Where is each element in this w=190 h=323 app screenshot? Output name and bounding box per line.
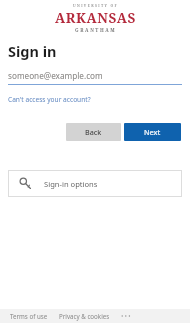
button[interactable]: Can't access your account?: [8, 95, 91, 104]
button[interactable]: Terms of use: [10, 312, 48, 320]
staticText: U N I V E R S I T Y O F: [73, 3, 117, 8]
button[interactable]: Sign-in options: [8, 170, 182, 197]
button[interactable]: More options: [119, 309, 133, 323]
button[interactable]: someone@example.com: [8, 70, 182, 85]
button[interactable]: Back: [66, 123, 121, 141]
staticText: Sign-in options: [44, 179, 98, 189]
staticText: ARKANSAS: [55, 9, 136, 27]
button[interactable]: Privacy & cookies: [59, 312, 110, 320]
staticText: Back: [85, 127, 102, 137]
staticText: Sign in: [8, 41, 57, 61]
staticText: Privacy & cookies: [59, 312, 110, 320]
staticText: someone@example.com: [8, 70, 103, 81]
staticText: G R A N T H A M: [75, 27, 115, 33]
staticText: Can't access your account?: [8, 95, 91, 104]
staticText: Next: [144, 127, 161, 137]
staticText: Terms of use: [10, 312, 48, 320]
button[interactable]: Next: [124, 123, 181, 141]
